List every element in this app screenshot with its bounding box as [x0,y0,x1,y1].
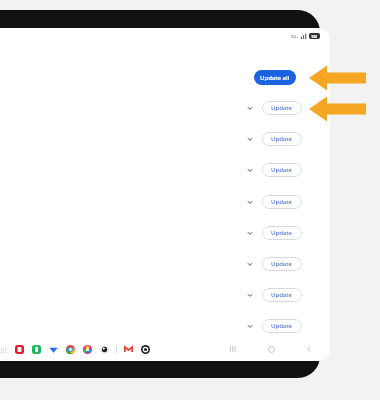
button[interactable]: Update all [254,70,296,85]
staticText: 5G+ [291,34,299,39]
button[interactable]: Update [262,195,302,209]
staticText: Update all [260,74,290,82]
staticText: Update [271,322,293,330]
button[interactable]: Expand details [243,319,257,333]
button[interactable]: Chrome [65,344,76,355]
button[interactable]: Update [262,257,302,271]
button[interactable]: Expand details [243,132,257,146]
button[interactable]: Camera [99,344,110,355]
button[interactable]: Expand details [243,101,257,115]
button[interactable]: Photos [82,344,93,355]
staticText: Update [271,166,293,174]
button[interactable]: Expand details [243,195,257,209]
button[interactable]: Apps [0,345,8,355]
staticText: Update [271,229,293,237]
button[interactable]: Update [262,226,302,240]
button[interactable]: Messages [48,344,59,355]
staticText: Update [271,291,293,299]
button[interactable]: Gmail [123,344,134,355]
button[interactable]: Expand details [243,226,257,240]
button[interactable]: Home [264,342,278,356]
staticText: Update [271,104,293,112]
button[interactable]: Expand details [243,163,257,177]
staticText: Update [271,135,293,143]
button[interactable]: Recent apps [226,342,240,356]
button[interactable]: Update [262,163,302,177]
staticText: Update [271,260,293,268]
button[interactable]: Update [262,319,302,333]
staticText: Update [271,198,293,206]
button[interactable]: Expand details [243,257,257,271]
button[interactable]: Samsung Notes [14,344,25,355]
button[interactable]: Update [262,288,302,302]
staticText: 100 [311,34,318,39]
button[interactable]: Update [262,132,302,146]
button[interactable]: Back [302,342,316,356]
button[interactable]: Phone [31,344,42,355]
button[interactable]: Expand details [243,288,257,302]
button[interactable]: Update [262,101,302,115]
button[interactable]: Settings [140,344,151,355]
